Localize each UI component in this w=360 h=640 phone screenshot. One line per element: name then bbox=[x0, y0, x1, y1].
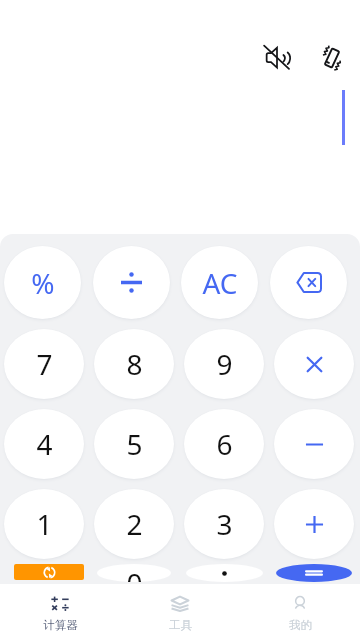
staticText: 0 bbox=[126, 564, 143, 582]
staticText: 1 bbox=[36, 505, 53, 543]
button[interactable]: 2 bbox=[94, 489, 174, 559]
staticText: 6 bbox=[216, 425, 233, 463]
staticText: 2 bbox=[126, 505, 143, 543]
staticText: 5 bbox=[126, 425, 143, 463]
button[interactable]: 工具 bbox=[120, 584, 240, 640]
button[interactable]: Sound off bbox=[259, 40, 295, 76]
staticText: 我的 bbox=[289, 618, 312, 632]
button[interactable]: 3 bbox=[184, 489, 264, 559]
staticText: 7 bbox=[36, 345, 53, 383]
button[interactable]: Refresh bbox=[14, 564, 84, 580]
staticText: 计算器 bbox=[43, 618, 78, 632]
button[interactable]: % bbox=[4, 246, 81, 319]
staticText: 工具 bbox=[169, 618, 192, 632]
button[interactable]: 我的 bbox=[240, 584, 360, 640]
button[interactable]: 7 bbox=[4, 329, 84, 399]
button[interactable]: AC bbox=[181, 246, 258, 319]
button[interactable]: 0 bbox=[97, 564, 171, 582]
staticText: % bbox=[31, 264, 55, 302]
button[interactable]: 5 bbox=[94, 409, 174, 479]
staticText: 3 bbox=[216, 505, 233, 543]
button[interactable]: 1 bbox=[4, 489, 84, 559]
button[interactable]: mul bbox=[274, 329, 354, 399]
button[interactable]: Decimal point bbox=[186, 564, 263, 582]
button[interactable]: div bbox=[93, 246, 170, 319]
button[interactable]: 6 bbox=[184, 409, 264, 479]
button[interactable]: Vibrate bbox=[314, 40, 350, 76]
button[interactable]: add bbox=[274, 489, 354, 559]
button[interactable]: Equals bbox=[276, 564, 352, 582]
button[interactable]: sub bbox=[274, 409, 354, 479]
staticText: 8 bbox=[126, 345, 143, 383]
button[interactable]: 计算器 bbox=[0, 584, 120, 640]
staticText: AC bbox=[202, 264, 238, 302]
button[interactable]: 8 bbox=[94, 329, 174, 399]
button[interactable]: 4 bbox=[4, 409, 84, 479]
staticText: 4 bbox=[36, 425, 53, 463]
button[interactable]: bks bbox=[270, 246, 347, 319]
button[interactable]: 9 bbox=[184, 329, 264, 399]
staticText: 9 bbox=[216, 345, 233, 383]
